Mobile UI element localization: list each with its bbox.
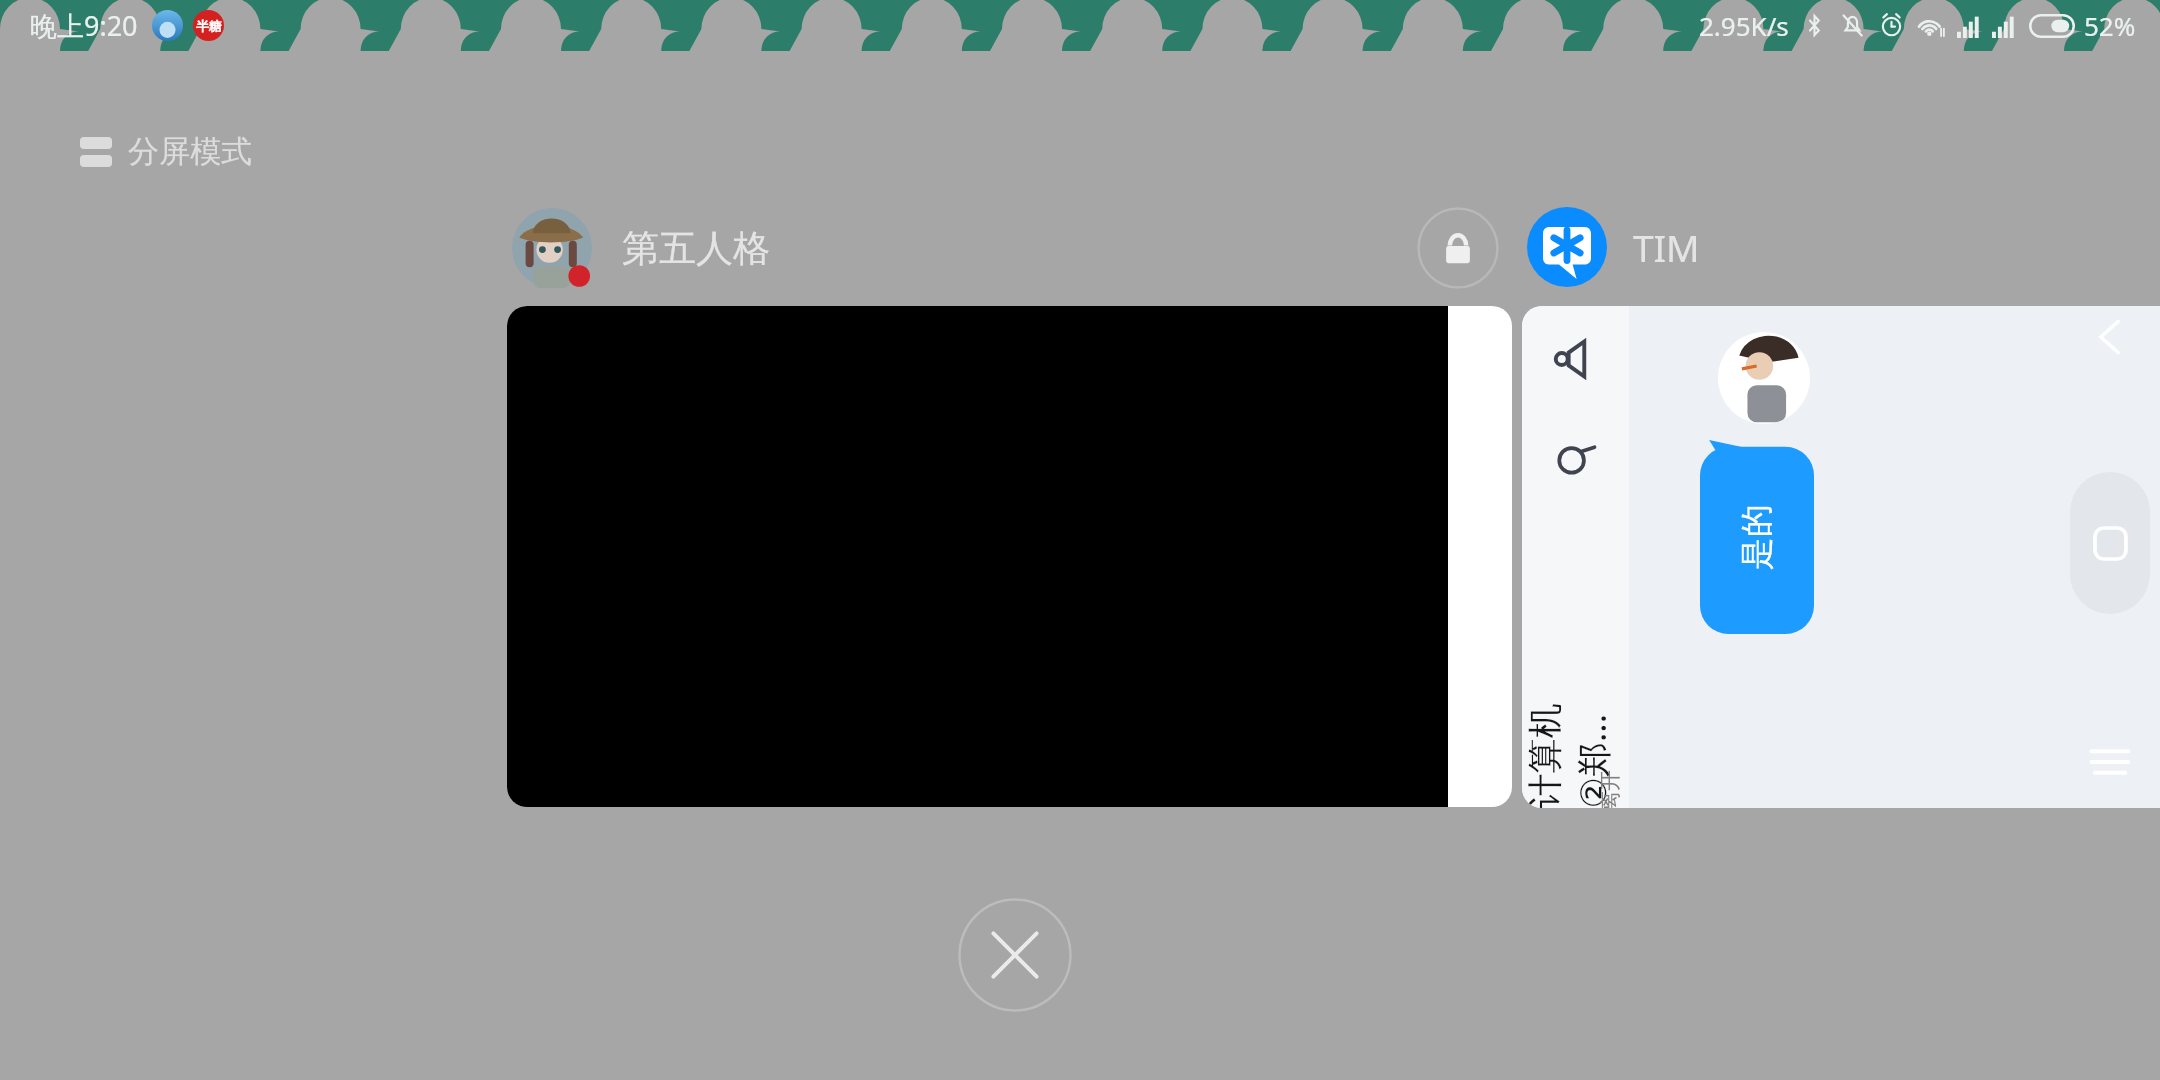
- staticText: 第五人格: [622, 225, 770, 272]
- other: Recents: [2089, 744, 2131, 780]
- staticText: TIM: [1633, 222, 1700, 272]
- button[interactable]: Lock app: [1417, 207, 1499, 289]
- staticText: 是的: [1736, 504, 1778, 570]
- button[interactable]: Close all: [958, 898, 1072, 1012]
- staticText: 半糖: [196, 18, 222, 34]
- button[interactable]: [507, 306, 1512, 807]
- button[interactable]: TIM: [1527, 207, 1700, 287]
- staticText: 晚上9:20: [30, 7, 138, 44]
- button[interactable]: Home: [2070, 472, 2150, 614]
- staticText: 离开: [1597, 770, 1623, 808]
- staticText: 计算机②郑...: [1522, 701, 1616, 808]
- staticText: 分屏模式: [128, 132, 252, 171]
- staticText: 2.95K/s: [1699, 8, 1789, 43]
- button[interactable]: 计算机②郑...: [1522, 306, 2160, 808]
- other: Back: [2087, 314, 2133, 360]
- staticText: 52%: [2084, 8, 2136, 43]
- button[interactable]: 分屏模式: [80, 132, 252, 171]
- button[interactable]: 第五人格: [512, 208, 770, 288]
